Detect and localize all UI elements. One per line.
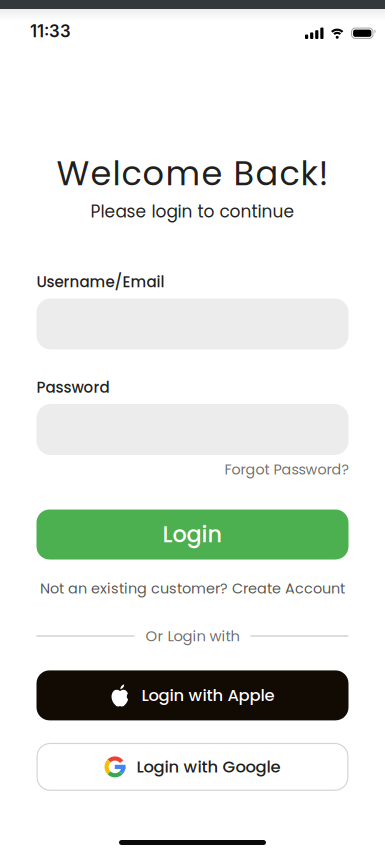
button[interactable]: Forgot Password? xyxy=(224,459,348,479)
button[interactable]: Login with Apple xyxy=(36,670,348,720)
staticText: Password xyxy=(36,377,109,398)
button[interactable]: Not an existing customer? Create Account xyxy=(40,578,345,599)
staticText: Login with Google xyxy=(136,755,280,778)
staticText: Or Login with xyxy=(145,626,239,646)
staticText: Login xyxy=(162,519,222,550)
staticText: 11:33 xyxy=(30,21,71,41)
staticText: Login with Apple xyxy=(141,684,274,707)
button[interactable]: Login with Google xyxy=(36,743,348,791)
staticText: Username/Email xyxy=(36,271,164,292)
staticText: Welcome Back! xyxy=(56,150,328,197)
staticText: Forgot Password? xyxy=(224,459,348,479)
staticText: Not an existing customer? Create Account xyxy=(40,578,345,599)
button[interactable]: Login xyxy=(36,509,348,559)
staticText: Please login to continue xyxy=(90,199,294,223)
